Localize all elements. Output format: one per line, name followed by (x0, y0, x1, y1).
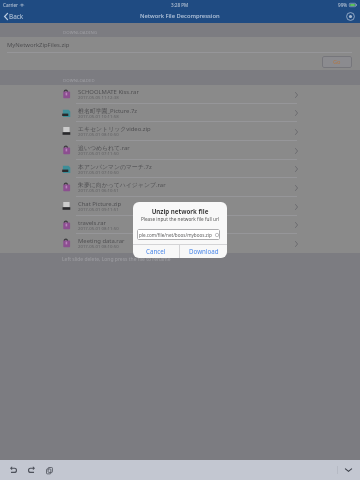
staticText: Chat Picture.zip (78, 200, 293, 208)
staticText: DOWNLOADING (63, 29, 98, 35)
staticText: Meeting data.rar (78, 237, 293, 245)
button[interactable]: 追いつめられて.rar (0, 141, 360, 160)
staticText: Unzip network file (133, 207, 227, 215)
button[interactable]: Redo (24, 463, 38, 477)
staticText: 朱夢に向かってハイジャンプ.rar (78, 181, 293, 189)
button[interactable]: 椎名町学園_Picture.7z (0, 104, 360, 122)
button[interactable]: 本アンパンマンのマーチ.7z (0, 160, 360, 178)
staticText: travels.rar (78, 219, 293, 227)
staticText: 2017-05-01 10:11:58 (78, 113, 119, 119)
staticText: Go (333, 58, 341, 66)
staticText: 2017-05-01 06:10:51 (78, 187, 119, 193)
button[interactable]: Back (0, 10, 27, 23)
button[interactable]: Meeting data.rar (0, 234, 360, 253)
staticText: 2017-05-01 09:11:51 (78, 206, 119, 212)
staticText: 2017-05-01 08:10:50 (78, 243, 119, 249)
staticText: 3:28 PM (171, 2, 189, 8)
staticText: 2017-05-05 11:12:38 (78, 94, 119, 100)
button[interactable]: Chat Picture.zip (0, 197, 360, 216)
button[interactable]: エキセントリックvideo.zip (0, 122, 360, 141)
button[interactable]: SCHOOLMATE Kiss.rar (0, 85, 360, 104)
staticText: Cancel (146, 247, 166, 255)
button[interactable]: Hide keyboard (341, 463, 355, 477)
staticText: 99% (338, 2, 348, 8)
button[interactable]: travels.rar (0, 216, 360, 234)
staticText: Carrier (3, 2, 18, 8)
staticText: ple.com/file/net/boos/myboos.zip (139, 232, 215, 238)
button[interactable]: Undo (6, 463, 20, 477)
staticText: 2017-05-01 08:10:50 (78, 131, 119, 137)
button[interactable]: Go (322, 56, 352, 68)
staticText: 追いつめられて.rar (78, 144, 293, 152)
staticText: Left slide delete, Long press the file t… (62, 256, 171, 263)
staticText: 椎名町学園_Picture.7z (78, 107, 293, 115)
staticText: MyNetworkZipFiles.zip (7, 41, 70, 49)
button[interactable]: 朱夢に向かってハイジャンプ.rar (0, 178, 360, 197)
staticText: Please input the network file full url (133, 216, 227, 222)
staticText: Back (9, 12, 24, 21)
staticText: 2017-05-01 08:11:50 (78, 225, 119, 231)
staticText: 本アンパンマンのマーチ.7z (78, 163, 293, 171)
staticText: Network File Decompression (140, 12, 220, 20)
button[interactable]: Download (180, 244, 227, 258)
button[interactable]: Add download (344, 10, 356, 22)
button[interactable]: Copy (42, 463, 56, 477)
staticText: SCHOOLMATE Kiss.rar (78, 88, 293, 96)
button[interactable]: ple.com/file/net/boos/myboos.zip (137, 229, 220, 240)
button[interactable]: MyNetworkZipFiles.zip (0, 37, 360, 53)
staticText: Download (189, 247, 219, 255)
staticText: 2017-05-01 07:11:50 (78, 150, 119, 156)
button[interactable]: Cancel (133, 244, 179, 258)
staticText: 2017-05-01 07:10:50 (78, 169, 119, 175)
staticText: エキセントリックvideo.zip (78, 125, 293, 133)
staticText: DOWNLOADED (63, 77, 95, 83)
